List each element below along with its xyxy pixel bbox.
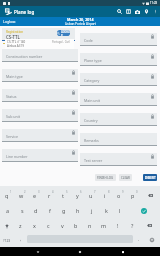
button[interactable]: ? [125, 218, 139, 233]
staticText: c [47, 222, 50, 229]
button[interactable]: m [97, 218, 111, 233]
button[interactable]: Remarks [80, 126, 157, 146]
staticText: Country [84, 118, 98, 123]
button[interactable]: h [71, 203, 85, 218]
button[interactable]: c [41, 218, 55, 233]
staticText: u [89, 192, 93, 199]
button[interactable]: Shift [0, 218, 13, 233]
button[interactable]: Status [2, 82, 78, 102]
button[interactable]: , [14, 233, 27, 247]
staticText: a [6, 207, 10, 214]
staticText: 7 [94, 190, 96, 194]
button[interactable]: Enter [127, 203, 160, 218]
button[interactable]: e [28, 188, 42, 203]
button[interactable]: Location [142, 6, 151, 17]
staticText: i [104, 192, 106, 199]
button[interactable]: INSERT [143, 174, 157, 181]
button[interactable]: Category [80, 66, 157, 86]
button[interactable]: f [43, 203, 57, 218]
button[interactable]: k [99, 203, 113, 218]
button[interactable]: b [69, 218, 83, 233]
button[interactable]: Main type [2, 62, 78, 82]
button[interactable]: More options [151, 6, 160, 17]
staticText: d [34, 207, 38, 214]
staticText: v [61, 222, 64, 229]
button[interactable]: CLEAR [119, 174, 132, 181]
button[interactable]: o [112, 188, 126, 203]
staticText: n [88, 222, 92, 229]
button[interactable]: Line number [2, 142, 78, 162]
button[interactable]: r [42, 188, 56, 203]
button[interactable]: z [13, 218, 27, 233]
button[interactable]: ! [111, 218, 125, 233]
button[interactable]: Recents [118, 247, 128, 256]
button[interactable]: . [133, 233, 144, 247]
staticText: Logbox [3, 19, 16, 24]
button[interactable]: Camera [133, 6, 142, 17]
button[interactable]: Navigate up [0, 6, 16, 17]
button[interactable]: Home [75, 247, 85, 256]
staticText: CLEAR [121, 176, 130, 180]
button[interactable]: s [15, 203, 29, 218]
button[interactable]: y [70, 188, 84, 203]
button[interactable]: Back [33, 247, 43, 256]
staticText: p [131, 192, 135, 199]
button[interactable]: Sub unit [2, 102, 78, 122]
staticText: w [19, 192, 24, 199]
button[interactable]: CS-TTL // 140 [5, 39, 74, 49]
button[interactable]: Country [80, 106, 157, 126]
staticText: 2 [24, 190, 26, 194]
button[interactable]: a [1, 203, 15, 218]
button[interactable]: Emoji [144, 233, 160, 247]
button[interactable]: Registration [2, 28, 75, 41]
staticText: m [101, 222, 107, 229]
button[interactable]: Backspace [140, 188, 160, 203]
button[interactable]: w [14, 188, 28, 203]
button[interactable]: t [56, 188, 70, 203]
button[interactable]: d [29, 203, 43, 218]
staticText: 0 [136, 190, 138, 194]
button[interactable]: Grid view [124, 6, 133, 17]
staticText: Status [6, 94, 17, 99]
button[interactable]: Service [2, 122, 78, 142]
staticText: FINISH LOG [97, 176, 114, 180]
staticText: e [33, 192, 37, 199]
staticText: 5 [66, 190, 68, 194]
staticText: CS-TTL // 140 [7, 40, 26, 44]
staticText: 8 [108, 190, 110, 194]
button[interactable]: Test server [80, 146, 157, 166]
button[interactable]: g [57, 203, 71, 218]
button[interactable]: LOOKUP [57, 30, 70, 36]
button[interactable]: Search [115, 6, 124, 17]
button[interactable]: l [113, 203, 127, 218]
button[interactable]: Main unit [80, 86, 157, 106]
staticText: CS-TTL [6, 34, 20, 40]
staticText: Line number [6, 154, 28, 159]
button[interactable]: Code [80, 26, 157, 46]
button[interactable]: j [85, 203, 99, 218]
staticText: Portugal - Civil [52, 40, 70, 44]
staticText: Construction number [6, 54, 43, 59]
staticText: Lisbon Portela Airport [65, 22, 96, 26]
button[interactable]: u [84, 188, 98, 203]
staticText: 3 [38, 190, 40, 194]
button[interactable]: Construction number [2, 42, 78, 62]
staticText: y [76, 192, 79, 199]
button[interactable]: i [98, 188, 112, 203]
button[interactable]: v [55, 218, 69, 233]
button[interactable]: q [0, 188, 14, 203]
button[interactable]: n [83, 218, 97, 233]
staticText: t [62, 192, 64, 199]
staticText: LOOKUP [61, 30, 70, 36]
button[interactable]: ?123 [0, 233, 14, 247]
staticText: Main unit [84, 98, 101, 103]
staticText: ?123 [3, 238, 11, 243]
button[interactable]: x [27, 218, 41, 233]
staticText: k [105, 207, 108, 214]
button[interactable]: Plane type [80, 46, 157, 66]
staticText: s [21, 207, 24, 214]
button[interactable]: p [126, 188, 140, 203]
button[interactable]: Backspace [139, 218, 160, 233]
button[interactable]: FINISH LOG [95, 174, 116, 181]
